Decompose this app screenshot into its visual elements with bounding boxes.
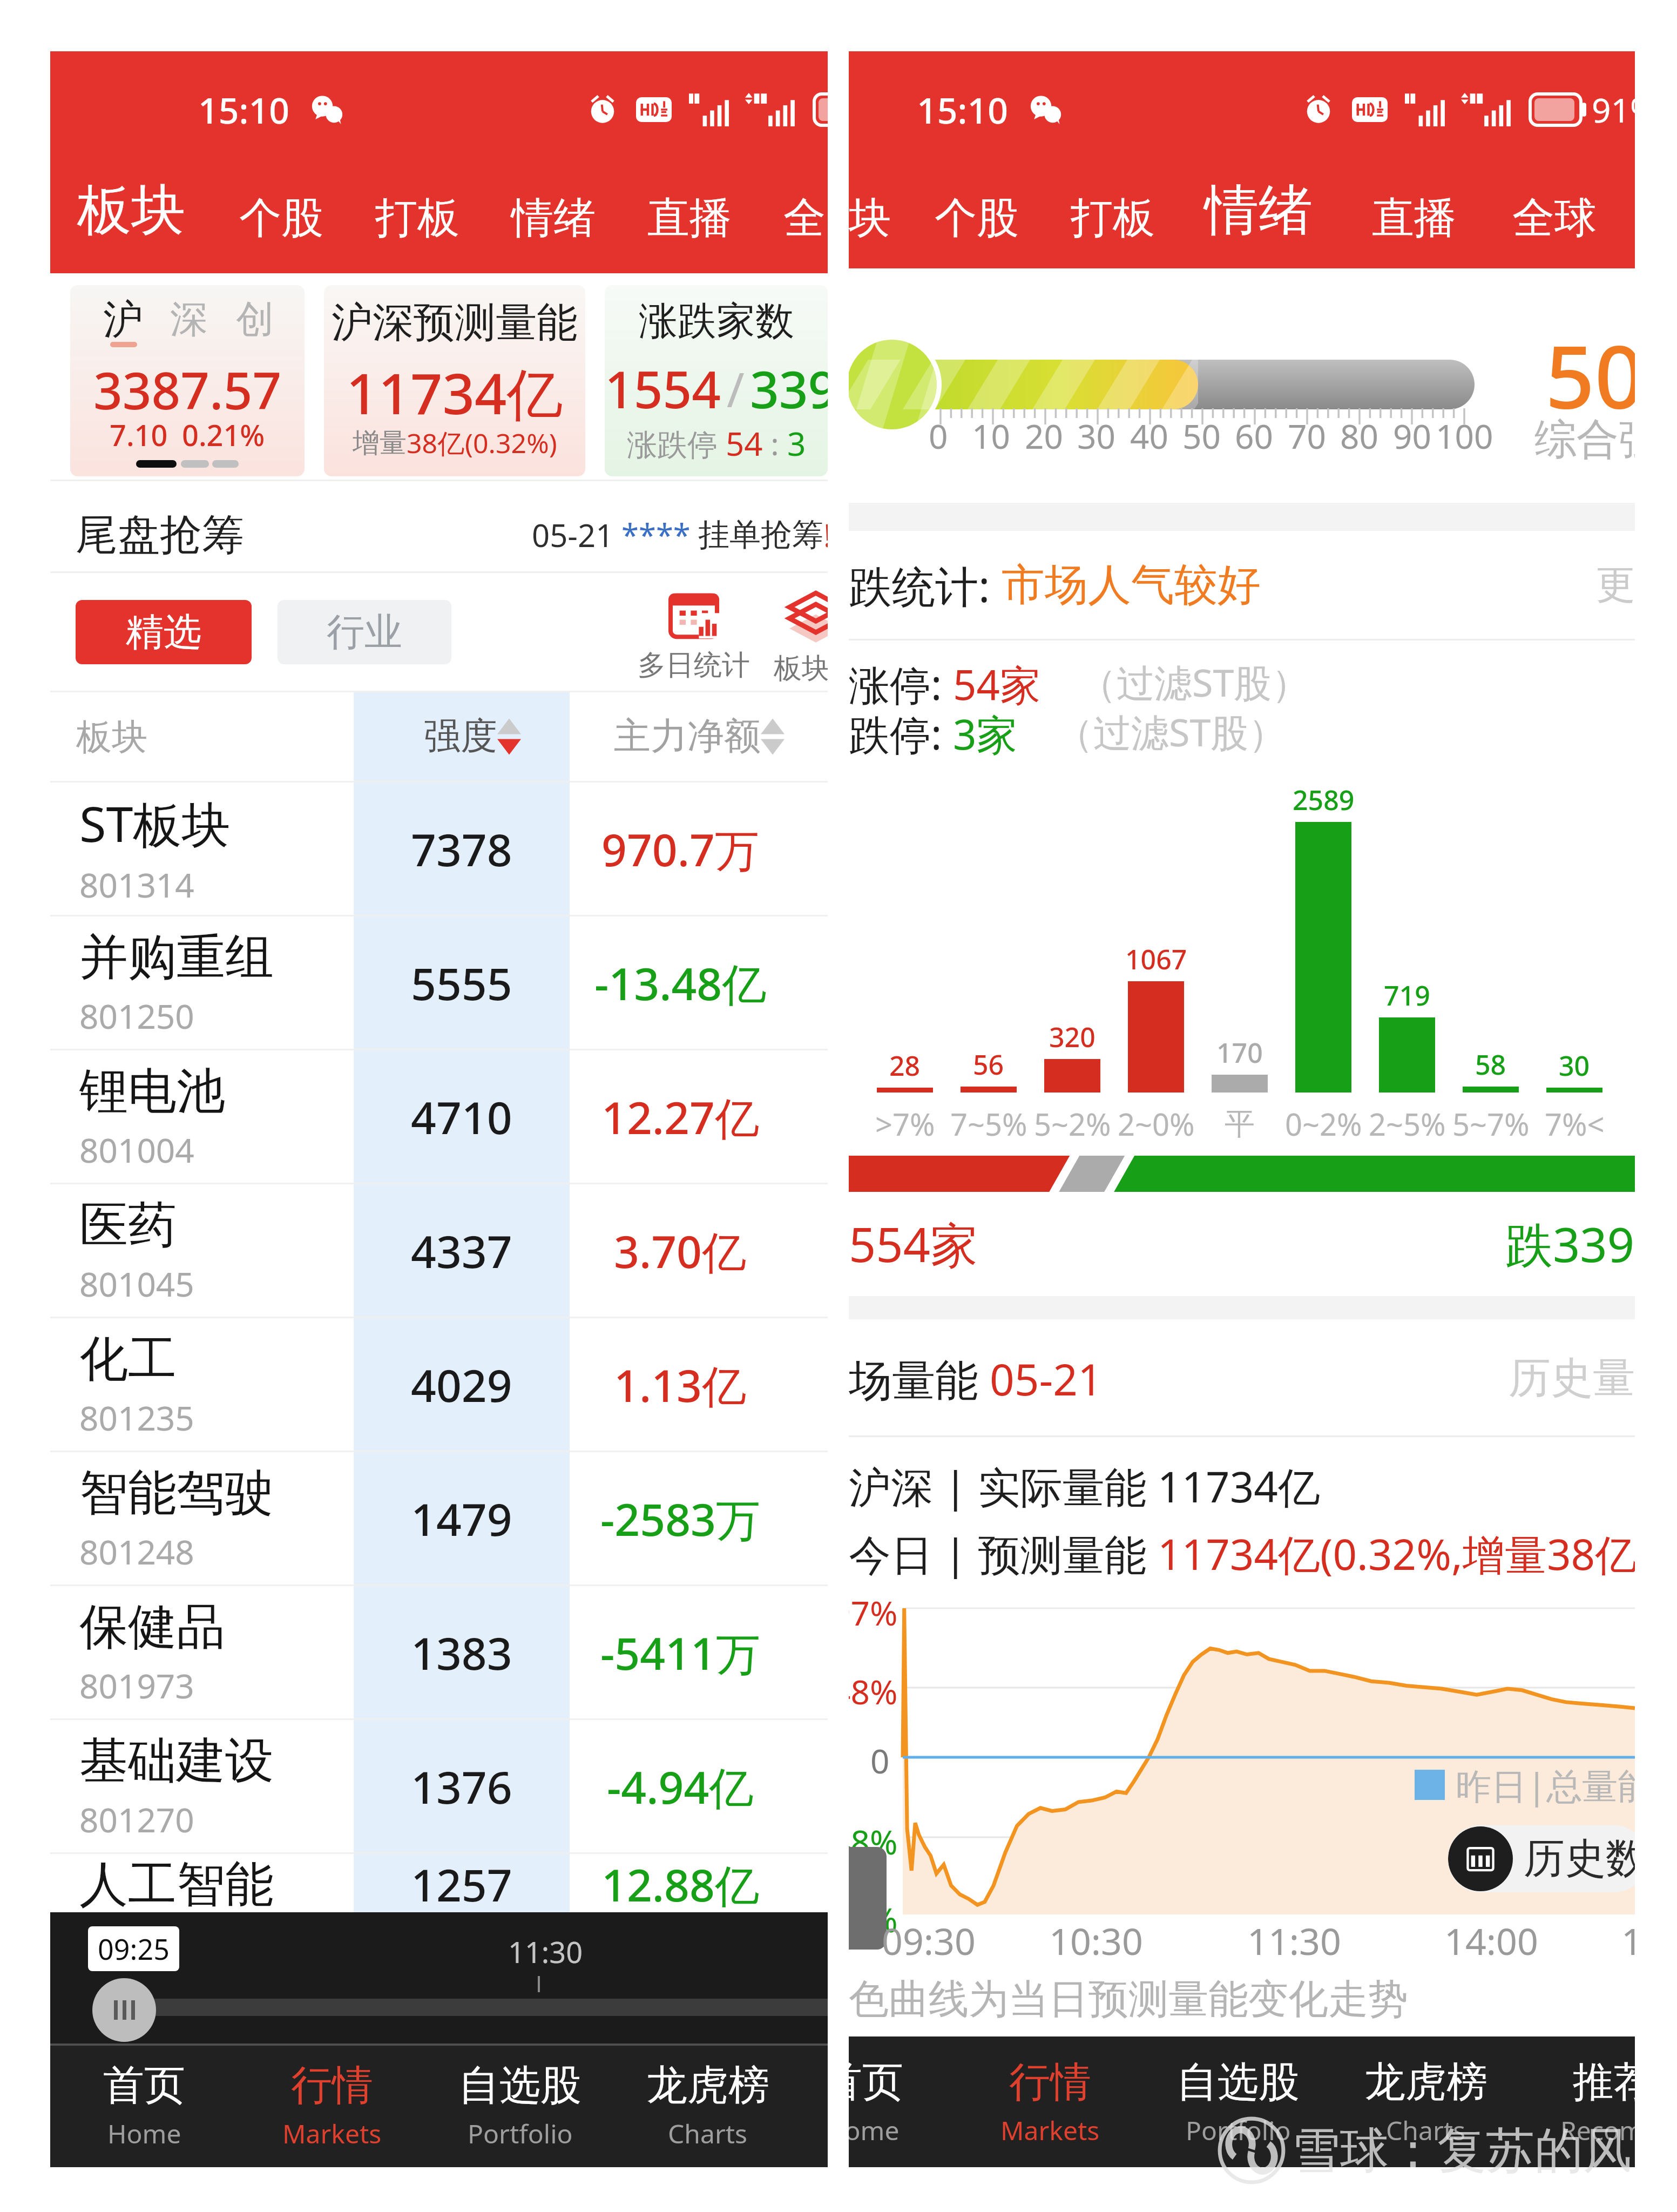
staticText: 全球 (1512, 192, 1597, 245)
staticText: 2~5% (1369, 1103, 1446, 1144)
staticText: Markets (282, 2116, 382, 2151)
staticText: 情绪 (511, 192, 596, 245)
button[interactable]: 化工 (50, 1318, 828, 1451)
staticText: 0.21% (182, 415, 265, 455)
staticText: 1257 (411, 1854, 512, 1912)
staticText: ST板块 (79, 790, 231, 857)
staticText: 打板 (1071, 192, 1155, 245)
staticText: 05-21 (990, 1349, 1103, 1408)
staticText: 3387.57 (93, 355, 282, 424)
staticText: 5~2% (1034, 1103, 1111, 1144)
staticText: 50 (1545, 316, 1635, 434)
staticText: 直播 (647, 192, 732, 245)
staticText: 1376 (411, 1756, 512, 1817)
staticText: 11734亿(0.32%,增量38亿) (1158, 1525, 1635, 1579)
staticText: Markets (1000, 2113, 1100, 2148)
staticText: 打板 (375, 192, 459, 245)
staticText: 1.13亿 (614, 1354, 747, 1415)
button[interactable]: 沪深预测量能 (324, 285, 585, 476)
button[interactable]: 并购重组 (50, 916, 828, 1049)
button[interactable]: 精选 (76, 600, 252, 664)
staticText: >7% (875, 1103, 935, 1144)
staticText: 11:30 (508, 1932, 583, 1972)
staticText: 历史量 (1509, 1352, 1635, 1405)
button[interactable]: 推荐 (1520, 2036, 1635, 2167)
button[interactable]: 锂电池 (50, 1050, 828, 1183)
button[interactable]: Play (92, 1978, 156, 2042)
staticText: 沪 (103, 295, 143, 345)
button[interactable]: 推荐 (802, 2044, 828, 2167)
staticText: 719 (1384, 977, 1430, 1014)
button[interactable]: 涨跌家数 (605, 285, 828, 476)
staticText: 54家 (953, 656, 1041, 707)
staticText: 1067 (1125, 941, 1187, 977)
staticText: / (727, 356, 745, 421)
staticText: 4710 (411, 1087, 512, 1147)
staticText: 行业 (327, 609, 402, 656)
button[interactable]: 医药 (50, 1184, 828, 1317)
staticText: 10 (972, 413, 1010, 458)
staticText: 4337 (411, 1220, 512, 1281)
staticText: 801314 (79, 862, 194, 907)
button[interactable]: 首页 (50, 2044, 238, 2167)
button[interactable]: 龙虎榜 (1332, 2036, 1520, 2167)
staticText: 7%< (1545, 1103, 1605, 1144)
staticText: 创 (236, 296, 274, 343)
staticText: 2~0% (1118, 1103, 1195, 1144)
button[interactable]: 自选股 (1144, 2036, 1332, 2167)
staticText: 12.88亿 (601, 1854, 759, 1912)
button[interactable]: 历史数 (1448, 1825, 1635, 1892)
staticText: 精选 (126, 609, 201, 656)
staticText: 38亿 (407, 424, 465, 461)
staticText: **** (621, 514, 691, 556)
button[interactable]: 行情 (956, 2036, 1144, 2167)
button[interactable]: 行业 (278, 600, 451, 664)
staticText: 板块叠 (774, 651, 828, 686)
staticText: 0~2% (1285, 1103, 1362, 1144)
staticText: 05-21 (532, 514, 614, 556)
staticText: 行情 (291, 2060, 373, 2112)
staticText: 情绪 (1205, 177, 1313, 245)
button[interactable]: Expand (849, 1847, 887, 1950)
staticText: 主力净额 (614, 713, 761, 760)
button[interactable]: 多日统计 (638, 590, 750, 683)
button[interactable]: 自选股 (426, 2044, 614, 2167)
button[interactable]: 基础建设 (50, 1720, 828, 1852)
staticText: 昨日|总量能 116 (1456, 1761, 1635, 1809)
staticText: 历史数 (1524, 1833, 1635, 1885)
staticText: 跌统计: (849, 556, 1002, 615)
staticText: -13.48亿 (594, 953, 767, 1013)
button[interactable]: ST板块 (50, 783, 828, 915)
button[interactable]: 板块叠 (774, 590, 828, 686)
staticText: 801250 (79, 993, 194, 1038)
staticText: 2589 (1293, 781, 1355, 818)
button[interactable]: 保健品 (50, 1586, 828, 1718)
staticText: 48% (849, 1669, 898, 1714)
button[interactable]: 首页 (849, 2036, 956, 2167)
staticText: 并购重组 (79, 927, 274, 988)
staticText: Home (107, 2116, 181, 2151)
staticText: 跌339 (1505, 1211, 1635, 1276)
staticText: 1554 (605, 354, 721, 423)
button[interactable]: 沪 (70, 285, 305, 476)
staticText: 5555 (411, 953, 512, 1013)
staticText: 801248 (79, 1529, 194, 1574)
staticText: 保健品 (79, 1596, 225, 1657)
staticText: 56 (973, 1046, 1004, 1083)
button[interactable]: 行情 (238, 2044, 426, 2167)
staticText: 09:25 (98, 1930, 170, 1968)
staticText: -2583万 (600, 1488, 760, 1549)
staticText: 板块 (77, 177, 185, 245)
button[interactable]: 人工智能 (50, 1854, 828, 1912)
staticText: (0.32%) (465, 424, 557, 461)
staticText: 个股 (935, 192, 1019, 245)
staticText: 97% (849, 1590, 898, 1635)
staticText: Recomm (1560, 2113, 1635, 2148)
staticText: 339 (750, 354, 828, 423)
button[interactable]: 智能驾驶 (50, 1452, 828, 1584)
staticText: 平 (1225, 1105, 1255, 1143)
staticText: Charts (668, 2116, 748, 2151)
staticText: 沪深预测量能 (332, 297, 578, 349)
staticText: 28 (889, 1047, 921, 1084)
button[interactable]: 龙虎榜 (614, 2044, 802, 2167)
